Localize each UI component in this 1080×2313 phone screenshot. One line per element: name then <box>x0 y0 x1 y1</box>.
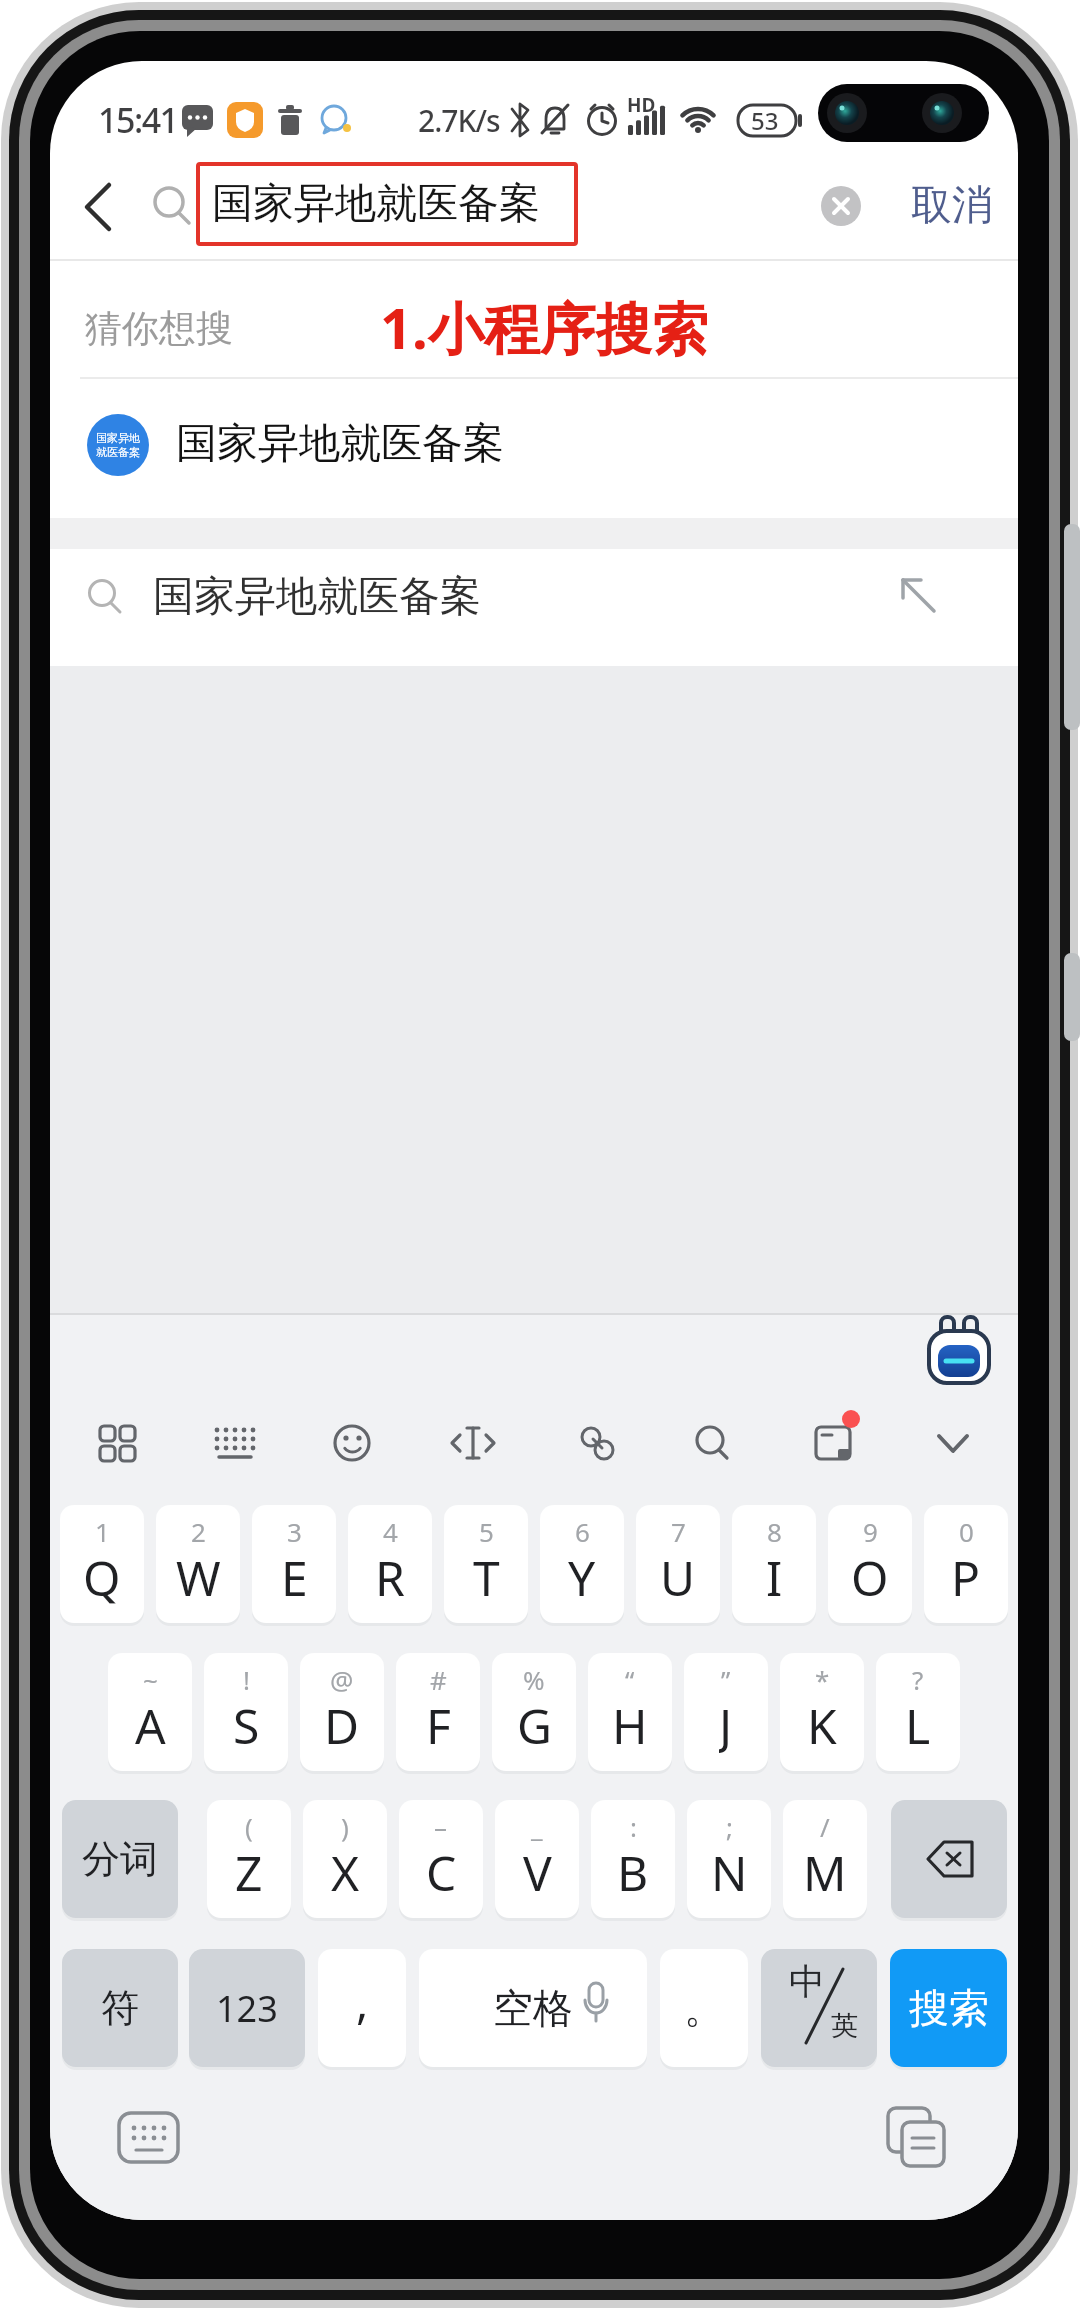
button[interactable]: 0 <box>924 1505 1008 1623</box>
staticText: 3 <box>287 1514 302 1549</box>
button[interactable] <box>203 1413 263 1473</box>
button[interactable] <box>50 391 1018 518</box>
staticText: L <box>905 1693 931 1753</box>
button[interactable]: 123 <box>189 1949 305 2067</box>
staticText: 国家异地就医备案 <box>212 178 540 230</box>
button[interactable]: “ <box>588 1653 672 1771</box>
staticText: B <box>617 1840 649 1900</box>
button[interactable]: ” <box>684 1653 768 1771</box>
staticText: D <box>324 1693 360 1753</box>
button[interactable]: 搜索 <box>890 1949 1007 2067</box>
staticText: 6 <box>575 1514 590 1549</box>
staticText: Q <box>83 1545 121 1605</box>
button[interactable] <box>675 1413 735 1473</box>
staticText: T <box>473 1545 500 1605</box>
button[interactable]: 4 <box>348 1505 432 1623</box>
staticText: ; <box>726 1809 733 1844</box>
staticText: X <box>331 1840 360 1900</box>
staticText: 搜索 <box>909 1983 989 2033</box>
staticText: 5 <box>479 1514 494 1549</box>
staticText: / <box>820 1809 830 1844</box>
button[interactable]: % <box>492 1653 576 1771</box>
staticText: J <box>719 1693 733 1753</box>
button[interactable]: 9 <box>828 1505 912 1623</box>
staticText: : <box>630 1809 637 1844</box>
staticText: % <box>523 1662 545 1697</box>
staticText: 8 <box>767 1514 782 1549</box>
button[interactable]: / <box>783 1800 867 1918</box>
button[interactable]: 3 <box>252 1505 336 1623</box>
button[interactable]: 7 <box>636 1505 720 1623</box>
staticText: O <box>851 1545 889 1605</box>
staticText: ? <box>912 1662 924 1697</box>
button[interactable]: – <box>399 1800 483 1918</box>
staticText: W <box>176 1545 221 1605</box>
button[interactable] <box>85 1413 145 1473</box>
staticText: 123 <box>216 1984 278 2033</box>
button[interactable]: : <box>591 1800 675 1918</box>
button[interactable] <box>198 164 576 244</box>
button[interactable]: 2 <box>156 1505 240 1623</box>
staticText: 分词 <box>82 1835 158 1883</box>
button[interactable] <box>557 1413 617 1473</box>
staticText: U <box>660 1545 696 1605</box>
staticText: ~ <box>143 1662 158 1697</box>
staticText: Y <box>568 1545 596 1605</box>
button[interactable]: 中 <box>761 1949 877 2067</box>
button[interactable] <box>119 2113 178 2162</box>
button[interactable]: ( <box>207 1800 291 1918</box>
button[interactable]: , <box>318 1949 406 2067</box>
button[interactable]: 分词 <box>62 1800 178 1918</box>
button[interactable]: ? <box>876 1653 960 1771</box>
button[interactable]: @ <box>300 1653 384 1771</box>
staticText: A <box>135 1693 166 1753</box>
staticText: 53 <box>751 104 779 137</box>
staticText: 1.小程序搜索 <box>380 289 708 365</box>
staticText: S <box>233 1693 260 1753</box>
button[interactable]: * <box>780 1653 864 1771</box>
staticText: , <box>356 1970 369 2030</box>
staticText: H <box>612 1693 648 1753</box>
staticText: _ <box>531 1809 543 1844</box>
button[interactable] <box>50 549 1018 666</box>
button[interactable]: ; <box>687 1800 771 1918</box>
staticText: 2.7K/s <box>418 100 500 141</box>
button[interactable] <box>891 1800 1007 1918</box>
button[interactable]: _ <box>495 1800 579 1918</box>
button[interactable]: 符 <box>62 1949 178 2067</box>
button[interactable]: 空格 <box>419 1949 647 2067</box>
button[interactable]: 。 <box>660 1949 748 2067</box>
button[interactable]: 8 <box>732 1505 816 1623</box>
button[interactable] <box>321 1413 381 1473</box>
staticText: I <box>766 1545 783 1605</box>
button[interactable]: # <box>396 1653 480 1771</box>
button[interactable]: ~ <box>108 1653 192 1771</box>
button[interactable]: 1 <box>60 1505 144 1623</box>
staticText: @ <box>330 1662 354 1697</box>
button[interactable] <box>888 2108 944 2166</box>
staticText: 英 <box>831 2009 858 2043</box>
button[interactable]: 取消 <box>911 166 993 246</box>
button[interactable]: 5 <box>444 1505 528 1623</box>
button[interactable]: ) <box>303 1800 387 1918</box>
staticText: G <box>517 1693 552 1753</box>
button[interactable]: 6 <box>540 1505 624 1623</box>
staticText: 空格 <box>493 1983 573 2033</box>
staticText: ) <box>341 1809 349 1844</box>
staticText: N <box>711 1840 748 1900</box>
staticText: Z <box>235 1840 263 1900</box>
staticText: 取消 <box>911 180 993 232</box>
button[interactable] <box>793 1413 853 1473</box>
staticText: C <box>426 1840 457 1900</box>
button[interactable] <box>911 1413 971 1473</box>
staticText: R <box>375 1545 405 1605</box>
button[interactable]: ! <box>204 1653 288 1771</box>
button[interactable] <box>816 181 866 231</box>
staticText: 中 <box>789 1959 825 2004</box>
button[interactable] <box>439 1413 499 1473</box>
button[interactable] <box>70 171 130 241</box>
staticText: 国家异地 <box>96 431 140 445</box>
staticText: ( <box>245 1809 253 1844</box>
staticText: 7 <box>671 1514 686 1549</box>
staticText: 0 <box>959 1514 974 1549</box>
